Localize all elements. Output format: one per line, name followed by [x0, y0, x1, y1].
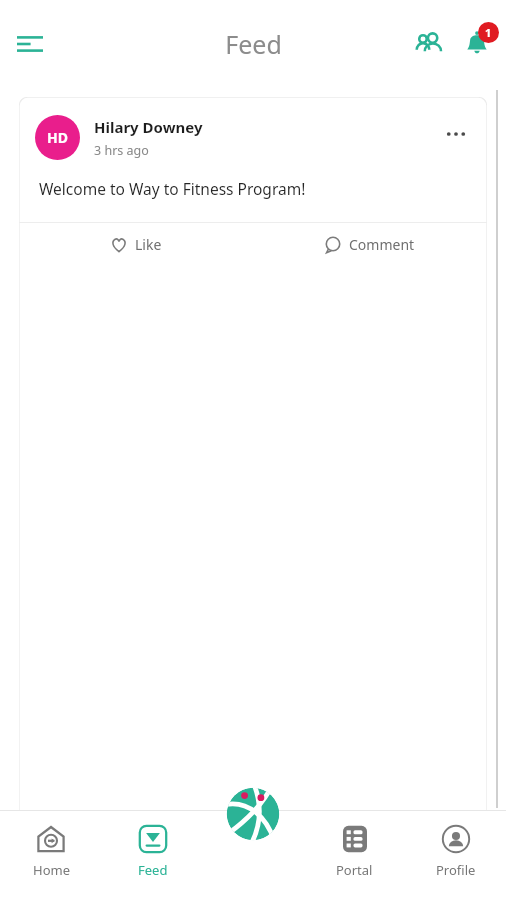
button[interactable]: People — [406, 21, 452, 67]
staticText: Profile — [436, 861, 476, 879]
button[interactable]: More options — [437, 115, 475, 153]
button[interactable]: Like — [19, 223, 253, 266]
staticText: 1 — [485, 25, 492, 40]
button[interactable]: Menu — [6, 20, 54, 68]
button[interactable]: Comment — [253, 223, 487, 266]
staticText: Home — [33, 861, 70, 879]
button[interactable]: Portal — [304, 810, 405, 900]
button[interactable]: Profile — [405, 810, 506, 900]
staticText: Hilary Downey — [94, 117, 203, 137]
staticText: Feed — [225, 27, 282, 61]
staticText: Comment — [349, 235, 415, 254]
staticText: HD — [47, 128, 68, 147]
staticText: Portal — [336, 861, 373, 879]
staticText: Like — [135, 235, 162, 254]
button[interactable]: Feed — [102, 810, 203, 900]
button[interactable]: Notifications — [454, 21, 500, 67]
staticText: Welcome to Way to Fitness Program! — [39, 178, 306, 199]
button[interactable]: HD — [19, 97, 487, 900]
button[interactable]: Home — [0, 810, 102, 900]
button[interactable]: Add — [225, 786, 281, 842]
staticText: 3 hrs ago — [94, 142, 149, 159]
staticText: Feed — [138, 861, 168, 879]
